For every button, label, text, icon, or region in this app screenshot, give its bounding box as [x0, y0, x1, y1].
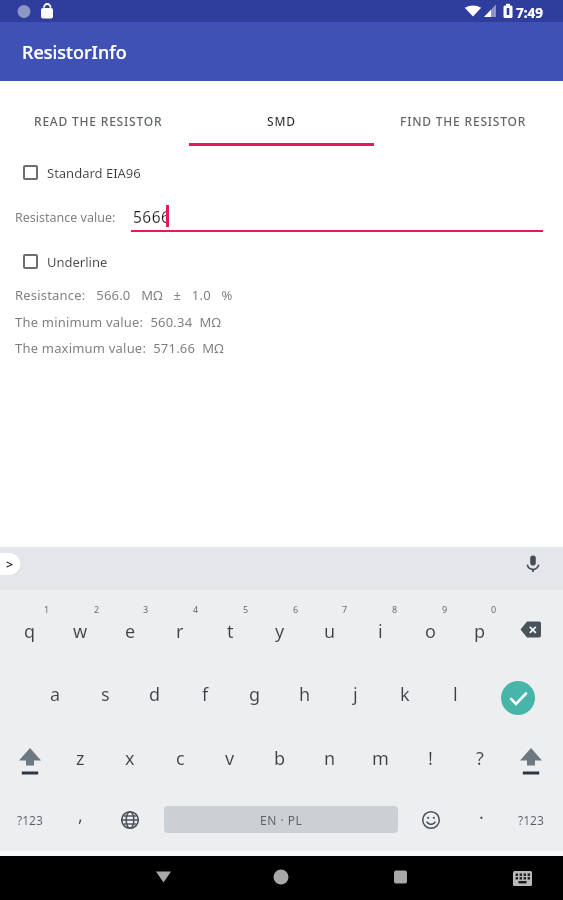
staticText: SMD — [267, 113, 296, 129]
staticText: a — [50, 682, 61, 707]
button[interactable]: d — [132, 666, 178, 722]
staticText: r — [176, 619, 184, 644]
staticText: The minimum value: 560.34 MΩ — [15, 313, 221, 331]
button[interactable] — [524, 552, 542, 572]
button[interactable]: SMD — [187, 81, 375, 146]
button[interactable]: u — [307, 603, 353, 659]
button[interactable] — [0, 856, 563, 900]
staticText: 1 — [44, 603, 50, 615]
button[interactable]: y — [257, 603, 303, 659]
button[interactable]: ?123 — [508, 795, 554, 845]
staticText: ! — [428, 746, 433, 771]
staticText: 7:49 — [516, 4, 543, 22]
staticText: i — [378, 619, 383, 644]
button[interactable] — [121, 811, 139, 829]
button[interactable]: ? — [457, 730, 503, 786]
button[interactable]: g — [232, 666, 278, 722]
button[interactable]: ! — [407, 730, 453, 786]
button[interactable]: . — [461, 787, 501, 837]
button[interactable] — [519, 746, 543, 776]
staticText: The maximum value: 571.66 MΩ — [15, 339, 224, 357]
button[interactable]: x — [107, 730, 153, 786]
button[interactable]: t — [207, 603, 253, 659]
staticText: EN · PL — [260, 812, 303, 828]
button[interactable]: b — [257, 730, 303, 786]
staticText: h — [299, 682, 311, 707]
staticText: n — [324, 746, 336, 771]
button[interactable]: Underline — [23, 253, 108, 269]
staticText: d — [149, 682, 161, 707]
button[interactable] — [501, 681, 535, 715]
staticText: l — [453, 682, 458, 707]
button[interactable]: f — [182, 666, 228, 722]
staticText: Resistance value: — [15, 209, 116, 226]
staticText: j — [353, 682, 358, 707]
button[interactable]: w — [57, 603, 103, 659]
button[interactable]: o — [407, 603, 453, 659]
staticText: k — [400, 682, 410, 707]
staticText: > — [6, 556, 14, 573]
staticText: READ THE RESISTOR — [34, 113, 163, 129]
staticText: f — [202, 682, 209, 707]
button[interactable]: n — [307, 730, 353, 786]
staticText: ?123 — [518, 812, 544, 828]
staticText: c — [176, 746, 185, 771]
staticText: g — [249, 682, 261, 707]
staticText: x — [125, 746, 135, 771]
button[interactable]: FIND THE RESISTOR — [375, 81, 563, 146]
staticText: ? — [476, 746, 484, 771]
button[interactable]: ?123 — [7, 795, 53, 845]
button[interactable]: a — [32, 666, 78, 722]
button[interactable]: , — [60, 790, 100, 840]
staticText: 6 — [293, 603, 299, 615]
staticText: 0 — [491, 603, 497, 615]
button[interactable]: j — [332, 666, 378, 722]
button[interactable]: c — [157, 730, 203, 786]
button[interactable]: READ THE RESISTOR — [0, 81, 187, 146]
button[interactable]: h — [282, 666, 328, 722]
staticText: w — [73, 619, 88, 644]
staticText: u — [324, 619, 336, 644]
staticText: Standard EIA96 — [47, 164, 141, 180]
button[interactable]: k — [382, 666, 428, 722]
staticText: Underline — [47, 253, 108, 269]
staticText: 4 — [193, 603, 199, 615]
button[interactable] — [18, 746, 42, 776]
staticText: v — [225, 746, 235, 771]
button[interactable]: i — [357, 603, 403, 659]
staticText: 2 — [94, 603, 100, 615]
staticText: 3 — [143, 603, 149, 615]
button[interactable]: 5666 — [133, 206, 171, 227]
staticText: Resistance: 566.0 MΩ ± 1.0 % — [15, 286, 233, 304]
button[interactable]: p — [457, 603, 503, 659]
staticText: m — [372, 746, 389, 771]
staticText: e — [125, 619, 136, 644]
staticText: q — [24, 619, 36, 644]
staticText: p — [474, 619, 486, 644]
button[interactable] — [520, 621, 544, 638]
staticText: 8 — [392, 603, 398, 615]
button[interactable]: m — [357, 730, 403, 786]
staticText: , — [78, 803, 83, 828]
button[interactable]: EN · PL — [164, 806, 398, 833]
staticText: b — [274, 746, 286, 771]
staticText: 9 — [442, 603, 448, 615]
staticText: 5 — [243, 603, 249, 615]
button[interactable] — [422, 811, 440, 829]
staticText: s — [101, 682, 110, 707]
button[interactable]: r — [157, 603, 203, 659]
staticText: FIND THE RESISTOR — [400, 113, 527, 129]
button[interactable]: s — [82, 666, 128, 722]
staticText: ResistorInfo — [22, 40, 127, 65]
button[interactable]: > — [0, 553, 20, 575]
staticText: y — [275, 619, 285, 644]
staticText: . — [479, 800, 484, 825]
staticText: 7 — [342, 603, 348, 615]
button[interactable]: q — [7, 603, 53, 659]
button[interactable]: Standard EIA96 — [23, 164, 141, 180]
button[interactable]: v — [207, 730, 253, 786]
button[interactable]: e — [107, 603, 153, 659]
button[interactable]: l — [432, 666, 478, 722]
staticText: ?123 — [17, 812, 43, 828]
button[interactable]: z — [57, 730, 103, 786]
